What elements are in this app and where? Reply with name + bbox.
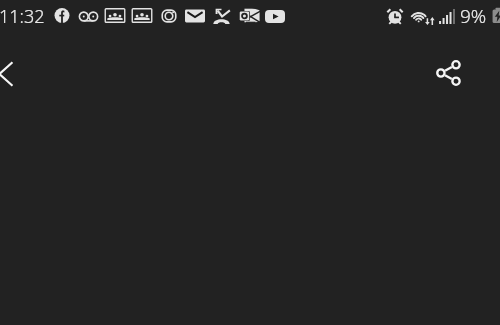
button[interactable]: Back xyxy=(0,50,24,98)
staticText: 11:32 xyxy=(0,4,45,29)
staticText: 9% xyxy=(460,3,487,29)
button[interactable]: Share xyxy=(424,49,472,97)
